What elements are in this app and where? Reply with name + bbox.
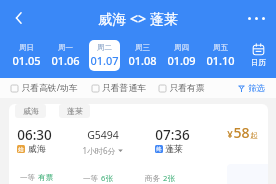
button[interactable]: 周二 <box>85 38 124 72</box>
staticText: 01.09 <box>167 53 196 68</box>
button[interactable]: 只看高铁/动车 <box>11 82 78 94</box>
staticText: 有票 <box>38 173 53 182</box>
staticText: 威海 <> 蓬莱 <box>98 9 178 28</box>
staticText: 筛选 <box>248 83 265 94</box>
button[interactable]: More options <box>240 2 272 34</box>
button[interactable]: ¥ <box>227 123 258 142</box>
staticText: 蓬莱 <box>165 143 183 154</box>
staticText: 威海 <box>23 106 39 116</box>
staticText: 只看高铁/动车 <box>21 82 78 94</box>
button[interactable]: 终 <box>155 143 183 154</box>
staticText: 周三 <box>135 43 150 52</box>
staticText: 01.08 <box>128 53 157 68</box>
staticText: 01.10 <box>206 53 235 68</box>
staticText: 周二 <box>97 43 112 52</box>
staticText: 6张 <box>101 173 113 183</box>
staticText: 06:30 <box>17 126 52 144</box>
staticText: 只看普通车 <box>102 83 146 94</box>
button[interactable]: 只看普通车 <box>92 83 146 94</box>
staticText: 58 <box>233 123 250 142</box>
staticText: 始 <box>18 146 24 153</box>
button[interactable]: Calendar <box>240 38 276 72</box>
button[interactable]: 商务 <box>145 173 175 183</box>
button[interactable]: 只看有票 <box>159 83 205 94</box>
button[interactable]: 筛选 <box>238 83 265 94</box>
button[interactable]: 周四 <box>162 38 201 72</box>
button[interactable]: 蓬莱 <box>59 104 90 118</box>
staticText: 2张 <box>163 173 175 183</box>
button[interactable]: 一等 <box>83 173 113 183</box>
button[interactable]: Back <box>3 2 35 34</box>
staticText: 日历 <box>251 58 266 67</box>
staticText: 07:36 <box>155 126 190 144</box>
staticText: 一等 <box>20 173 35 182</box>
staticText: 商务 <box>145 174 160 183</box>
staticText: 蓬莱 <box>67 106 83 116</box>
staticText: 周日 <box>19 43 34 52</box>
staticText: 周四 <box>174 43 189 52</box>
button[interactable]: 始 <box>17 143 46 154</box>
staticText: 01.06 <box>51 53 80 68</box>
staticText: 一等 <box>83 174 98 183</box>
staticText: 周五 <box>213 43 228 52</box>
staticText: 周一 <box>58 43 73 52</box>
staticText: ¥ <box>227 128 233 141</box>
staticText: 1小时6分 <box>82 145 116 156</box>
button[interactable]: 周日 <box>7 38 46 72</box>
staticText: 终 <box>156 146 162 153</box>
button[interactable]: 威海 <box>9 104 268 184</box>
staticText: 01.07 <box>90 53 119 68</box>
button[interactable]: 周五 <box>201 38 240 72</box>
staticText: 威海 <box>28 143 46 154</box>
button[interactable]: 一等 <box>20 173 53 182</box>
button[interactable]: 威海 <box>15 104 46 118</box>
button[interactable]: 周一 <box>46 38 85 72</box>
button[interactable]: 周三 <box>123 38 162 72</box>
staticText: 01.05 <box>12 53 41 68</box>
staticText: 只看有票 <box>169 83 205 94</box>
staticText: G5494 <box>87 128 119 142</box>
staticText: 起 <box>250 131 258 140</box>
